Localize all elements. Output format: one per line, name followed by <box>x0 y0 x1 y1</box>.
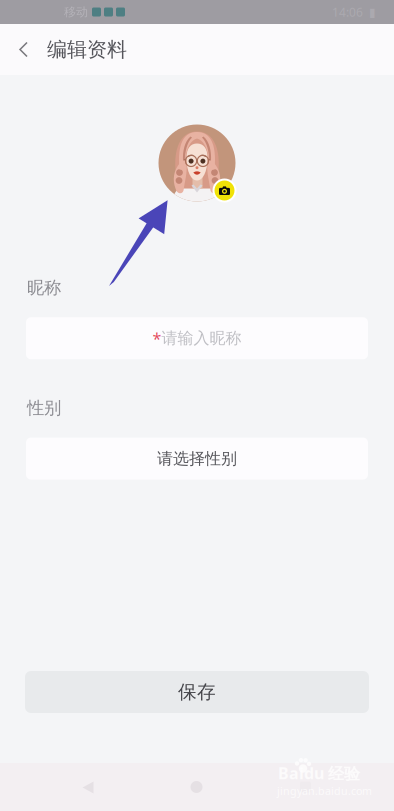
staticText: 移动 <box>64 5 88 19</box>
button[interactable]: * <box>26 317 368 359</box>
button[interactable]: 保存 <box>25 671 369 713</box>
staticText: 请输入昵称 <box>161 328 241 348</box>
staticText: 请选择性别 <box>157 449 237 468</box>
button[interactable]: Change profile photo <box>158 124 236 202</box>
staticText: * <box>152 328 161 349</box>
staticText: 昵称 <box>27 277 61 298</box>
staticText: Baidu 经验 <box>278 762 360 784</box>
staticText: 保存 <box>178 680 216 703</box>
staticText: jingyan.baidu.com <box>277 784 372 798</box>
button[interactable]: Back <box>0 24 47 75</box>
button[interactable]: Recents <box>251 763 360 811</box>
staticText: 性别 <box>27 397 61 419</box>
staticText: 14:06 ▮ <box>332 4 376 20</box>
staticText: 编辑资料 <box>47 37 127 62</box>
button[interactable]: 请选择性别 <box>26 438 368 480</box>
